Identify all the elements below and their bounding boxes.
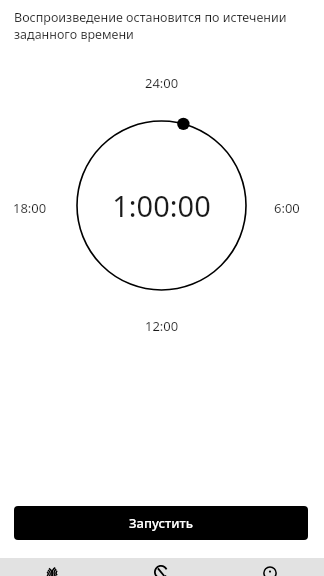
staticText: 6:00 [274,199,300,217]
staticText: 1:00:00 [112,186,211,225]
staticText: 12:00 [145,317,179,335]
staticText: 18:00 [13,199,47,217]
staticText: Воспроизведение остановится по истечении [14,9,287,26]
button[interactable]: Запустить [14,506,308,540]
staticText: заданного времени [14,26,134,43]
button[interactable]: Timer settings [237,558,305,576]
staticText: 24:00 [145,74,179,92]
button[interactable]: Timer dial, 1 hour [69,113,254,298]
button[interactable]: Sleep timer [128,558,196,576]
staticText: Запустить [129,514,193,532]
button[interactable]: Sound effects [20,558,88,576]
